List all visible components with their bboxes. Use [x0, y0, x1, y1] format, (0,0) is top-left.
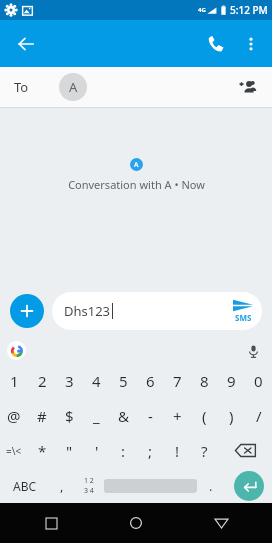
staticText: , — [60, 477, 64, 495]
staticText: 5 — [119, 371, 128, 391]
staticText: A — [134, 160, 139, 170]
staticText: 6 — [146, 371, 155, 391]
button[interactable]: / — [245, 398, 272, 433]
staticText: A — [69, 78, 78, 96]
button[interactable]: Back — [204, 506, 238, 540]
button[interactable]: A — [59, 73, 87, 101]
staticText: 3 4 — [84, 486, 94, 496]
staticText: / — [256, 406, 262, 426]
button[interactable]: . — [197, 468, 225, 503]
button[interactable]: ABC — [0, 468, 50, 503]
button[interactable]: Recent apps — [34, 506, 68, 540]
staticText: 7 — [173, 371, 182, 391]
button[interactable]: & — [110, 398, 137, 433]
button[interactable]: + — [164, 398, 191, 433]
button[interactable]: Send SMS — [233, 299, 253, 323]
button[interactable]: ? — [191, 433, 218, 468]
button[interactable]: Dhs123 — [52, 292, 262, 330]
button[interactable]: More options — [234, 27, 268, 61]
staticText: ; — [148, 441, 153, 461]
button[interactable]: Back — [8, 26, 44, 62]
button[interactable]: Home — [119, 506, 153, 540]
button[interactable]: : — [110, 433, 137, 468]
staticText: 8 — [200, 371, 209, 391]
button[interactable]: 7 — [164, 364, 191, 398]
button[interactable]: 0 — [245, 364, 272, 398]
staticText: 1 — [10, 371, 19, 391]
button[interactable]: Numeric keypad — [73, 468, 104, 503]
button[interactable]: " — [56, 433, 83, 468]
staticText: # — [37, 406, 47, 426]
button[interactable]: 1 — [0, 364, 28, 398]
button[interactable]: Space — [104, 478, 197, 493]
button[interactable]: Add recipients — [232, 71, 264, 103]
button[interactable]: , — [50, 468, 73, 503]
button[interactable]: 8 — [191, 364, 218, 398]
button[interactable]: - — [137, 398, 164, 433]
button[interactable]: Add attachment — [10, 294, 44, 328]
staticText: 9 — [227, 371, 236, 391]
staticText: _ — [93, 406, 100, 426]
button[interactable]: * — [28, 433, 56, 468]
staticText: To — [14, 78, 29, 96]
staticText: & — [118, 406, 129, 426]
staticText: 4 — [92, 371, 101, 391]
button[interactable]: ' — [83, 433, 110, 468]
staticText: * — [38, 441, 47, 461]
staticText: Conversation with A • Now — [68, 177, 205, 192]
staticText: ' — [95, 441, 99, 461]
button[interactable]: 4 — [83, 364, 110, 398]
staticText: @ — [7, 406, 21, 426]
staticText: . — [209, 477, 213, 495]
staticText: 5:12 PM — [230, 3, 268, 17]
staticText: - — [148, 406, 153, 426]
button[interactable]: 6 — [137, 364, 164, 398]
staticText: : — [121, 441, 126, 461]
staticText: ( — [202, 406, 207, 426]
button[interactable]: 3 — [56, 364, 83, 398]
button[interactable]: ! — [164, 433, 191, 468]
staticText: 4G — [198, 6, 206, 14]
button[interactable]: $ — [56, 398, 83, 433]
button[interactable]: ( — [191, 398, 218, 433]
staticText: 1 2 — [84, 476, 94, 486]
button[interactable]: ; — [137, 433, 164, 468]
staticText: ? — [201, 441, 208, 461]
staticText: ABC — [13, 478, 37, 494]
button[interactable]: 2 — [28, 364, 56, 398]
staticText: $ — [65, 406, 74, 426]
button[interactable]: Google search — [7, 341, 26, 360]
button[interactable]: @ — [0, 398, 28, 433]
button[interactable]: Backspace — [218, 433, 272, 468]
staticText: =\< — [6, 444, 22, 458]
staticText: + — [173, 406, 182, 426]
staticText: " — [66, 441, 73, 461]
staticText: ) — [229, 406, 234, 426]
staticText: Dhs123 — [64, 302, 111, 320]
button[interactable]: =\< — [0, 433, 28, 468]
staticText: 3 — [65, 371, 74, 391]
staticText: SMS — [235, 312, 252, 323]
button[interactable]: Enter — [225, 468, 272, 503]
button[interactable]: 5 — [110, 364, 137, 398]
staticText: ! — [175, 441, 180, 461]
staticText: 0 — [254, 371, 263, 391]
button[interactable]: # — [28, 398, 56, 433]
button[interactable]: ) — [218, 398, 245, 433]
staticText: 2 — [38, 371, 47, 391]
button[interactable]: 9 — [218, 364, 245, 398]
button[interactable]: Voice input — [242, 340, 264, 362]
button[interactable]: Call — [198, 26, 234, 62]
button[interactable]: _ — [83, 398, 110, 433]
